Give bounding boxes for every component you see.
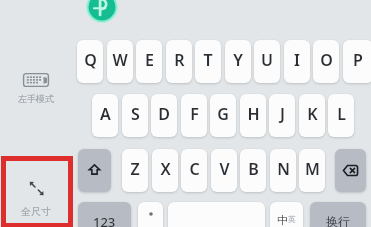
button[interactable]: Shift <box>78 149 111 192</box>
staticText: A <box>100 103 111 125</box>
button[interactable]: D <box>151 94 177 137</box>
button[interactable]: Y <box>225 40 251 83</box>
staticText: S <box>131 103 140 125</box>
staticText: B <box>248 158 259 180</box>
button[interactable]: L <box>328 94 354 137</box>
button[interactable]: H <box>240 94 266 137</box>
button[interactable]: Language <box>270 202 303 227</box>
staticText: T <box>203 49 213 71</box>
button[interactable]: A <box>92 94 118 137</box>
staticText: U <box>261 49 273 71</box>
staticText: F <box>190 103 199 125</box>
button[interactable]: Z <box>122 149 148 192</box>
button[interactable]: K <box>299 94 325 137</box>
staticText: E <box>145 49 154 71</box>
staticText: D <box>158 103 170 125</box>
button[interactable]: N <box>270 149 296 192</box>
staticText: J <box>280 103 285 125</box>
staticText: R <box>174 49 185 71</box>
staticText: P <box>353 49 363 71</box>
button[interactable]: M <box>299 149 325 192</box>
button[interactable]: Backspace <box>335 149 366 192</box>
staticText: H <box>247 103 260 125</box>
staticText: X <box>160 158 171 180</box>
staticText: Q <box>84 49 97 71</box>
button[interactable]: W <box>107 40 133 83</box>
staticText: L <box>337 103 346 125</box>
button[interactable]: X <box>152 149 178 192</box>
staticText: Z <box>130 158 140 180</box>
staticText: V <box>219 158 230 180</box>
staticText: 123 <box>93 213 116 227</box>
staticText: 中 <box>277 213 288 227</box>
button[interactable]: R <box>166 40 192 83</box>
button[interactable]: F <box>181 94 207 137</box>
button[interactable]: Left hand mode <box>6 66 66 106</box>
staticText: 全尺寸 <box>6 205 66 219</box>
button[interactable]: C <box>181 149 207 192</box>
staticText: C <box>189 158 200 180</box>
button[interactable]: T <box>195 40 221 83</box>
staticText: K <box>307 103 318 125</box>
button[interactable]: V <box>211 149 237 192</box>
button[interactable]: I <box>284 40 310 83</box>
staticText: I <box>294 49 300 71</box>
button[interactable]: P <box>343 40 371 83</box>
button[interactable]: Enter <box>310 202 366 227</box>
button[interactable]: Period <box>138 202 163 227</box>
staticText: 英 <box>288 214 296 224</box>
button[interactable]: Numbers <box>78 202 131 227</box>
staticText: O <box>320 49 333 71</box>
button[interactable]: Full size keyboard <box>6 161 66 219</box>
button[interactable]: J <box>269 94 295 137</box>
staticText: G <box>217 103 229 125</box>
button[interactable]: E <box>136 40 162 83</box>
staticText: W <box>112 49 128 71</box>
button[interactable]: G <box>210 94 236 137</box>
button[interactable]: S <box>122 94 148 137</box>
staticText: N <box>277 158 290 180</box>
button[interactable]: B <box>240 149 266 192</box>
button[interactable]: O <box>313 40 339 83</box>
staticText: Y <box>233 49 243 71</box>
button[interactable]: Q <box>77 40 103 83</box>
staticText: 左手模式 <box>6 93 66 107</box>
button[interactable]: App badge <box>86 0 118 23</box>
staticText: 换行 <box>326 214 350 227</box>
button[interactable]: U <box>254 40 280 83</box>
staticText: M <box>305 158 320 180</box>
